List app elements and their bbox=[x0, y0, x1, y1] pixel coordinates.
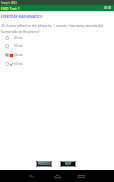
staticText: EVERYDAY MATHEMATICS bbox=[1, 14, 43, 18]
button[interactable]: 40 sec bbox=[0, 34, 114, 42]
button[interactable]: Home bbox=[51, 170, 63, 182]
staticText: Sony's IMO bbox=[1, 1, 17, 5]
staticText: IMO Test 1 bbox=[1, 6, 20, 11]
button[interactable]: NEXT bbox=[60, 161, 76, 167]
button[interactable]: 20 sec bbox=[0, 42, 114, 50]
staticText: 20 sec bbox=[14, 44, 24, 48]
button[interactable]: Back bbox=[25, 170, 37, 182]
staticText: 30:00 bbox=[104, 6, 112, 10]
staticText: 40 sec bbox=[14, 36, 24, 40]
button[interactable]: Recents bbox=[75, 170, 87, 182]
button[interactable]: 60 sec bbox=[0, 60, 114, 68]
staticText: PREVIOUS bbox=[38, 162, 51, 166]
staticText: 24 sec bbox=[14, 53, 24, 57]
staticText: 30. Kumar talked on the phone for 1 minu… bbox=[1, 24, 107, 34]
button[interactable]: PREVIOUS bbox=[36, 161, 52, 167]
staticText: 60 sec bbox=[14, 62, 24, 66]
button[interactable]: 24 sec bbox=[0, 51, 114, 59]
staticText: NEXT bbox=[65, 162, 72, 166]
